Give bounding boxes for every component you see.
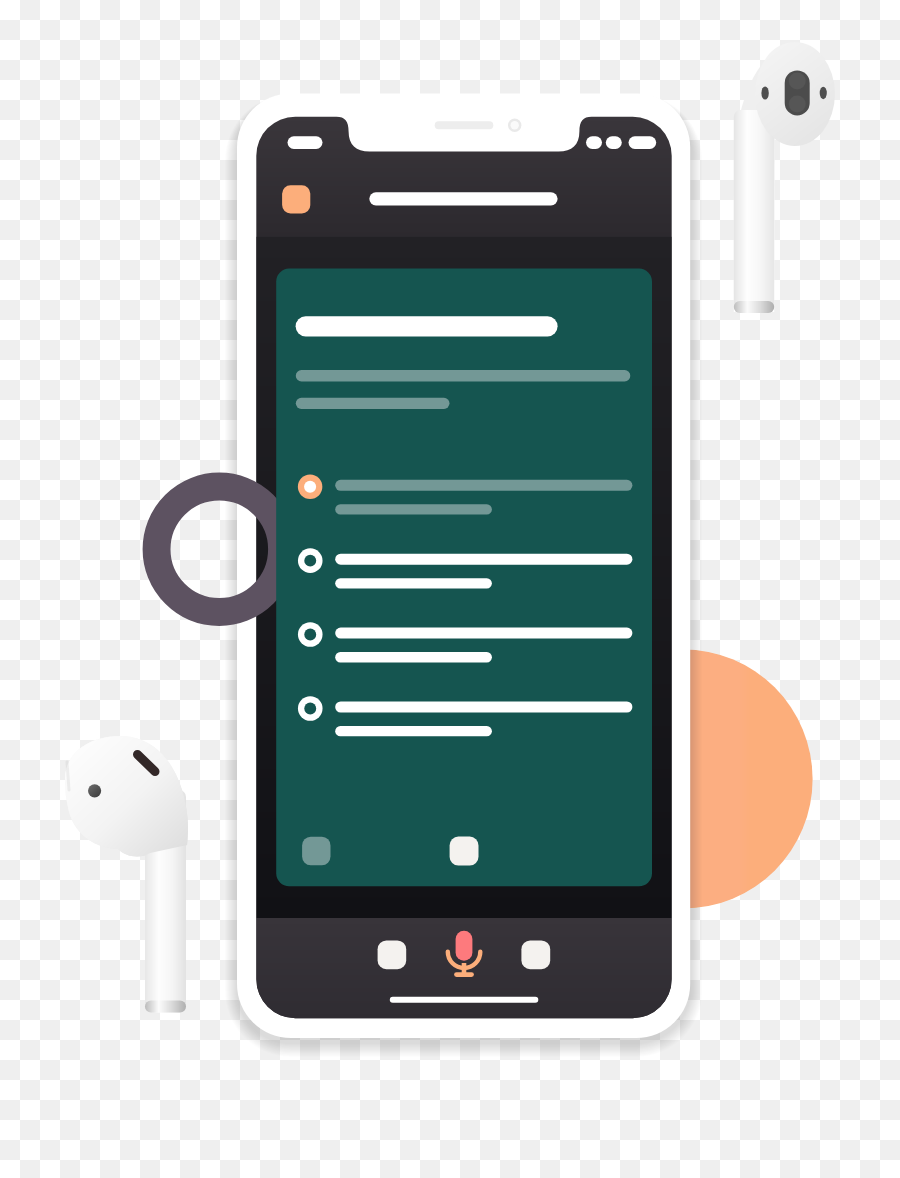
button[interactable]: Menu (274, 177, 318, 221)
button[interactable]: Send (443, 831, 484, 871)
button[interactable]: Home (372, 935, 413, 976)
button[interactable]: Record voice message (441, 924, 487, 984)
button[interactable]: Profile (515, 935, 556, 976)
button[interactable]: Attach (296, 831, 336, 871)
button[interactable]: Option 1, selected (292, 466, 644, 522)
button[interactable]: Option 4 (292, 688, 644, 744)
button[interactable]: Option 3 (292, 614, 644, 670)
button[interactable]: Option 2 (292, 540, 644, 596)
button[interactable]: Search (364, 185, 564, 211)
